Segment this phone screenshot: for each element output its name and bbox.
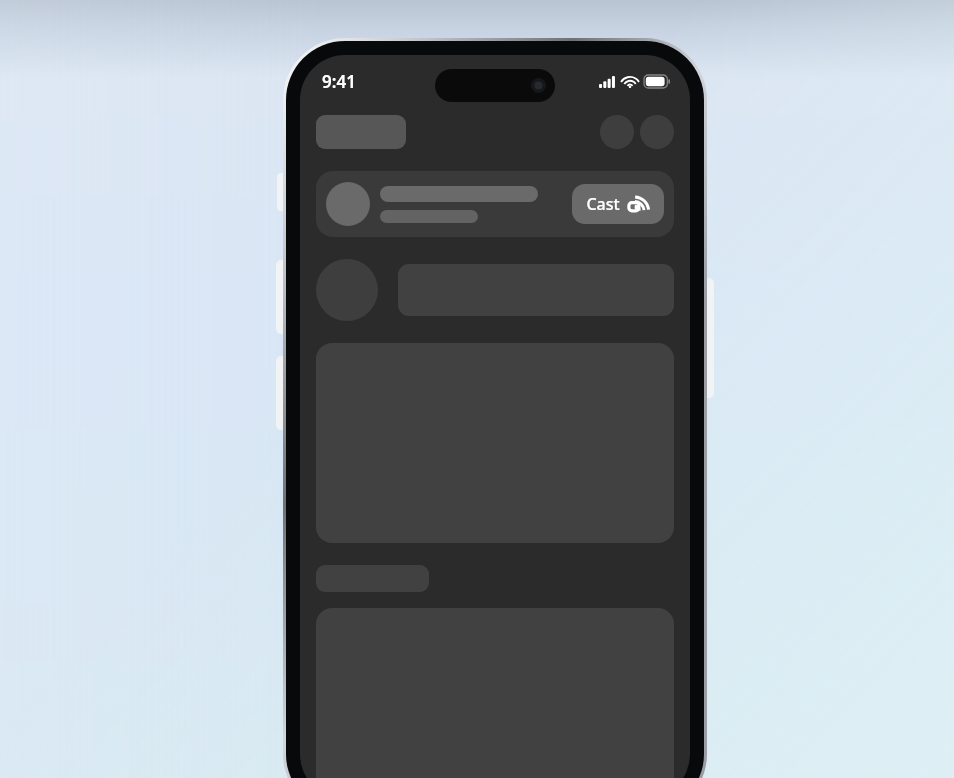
button[interactable]: Profile [316, 259, 378, 321]
button[interactable]: More options [640, 115, 674, 149]
button[interactable] [316, 115, 406, 149]
staticText: 9:41 [322, 70, 356, 93]
button[interactable] [316, 565, 429, 592]
staticText: Cast [586, 193, 620, 215]
button[interactable]: Cast [572, 184, 664, 224]
other: Cast to device [628, 193, 650, 215]
button[interactable]: Cast [316, 171, 674, 237]
button[interactable]: Account [600, 115, 634, 149]
